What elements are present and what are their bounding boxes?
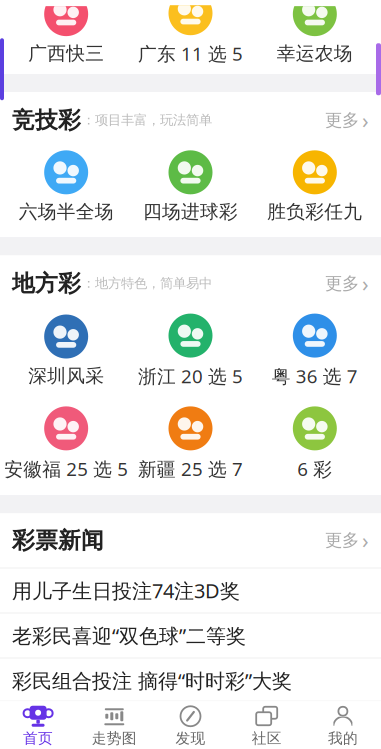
staticText: 六场半全场 (19, 200, 114, 223)
button[interactable]: 更多 (315, 267, 369, 300)
staticText: 老彩民喜迎“双色球”二等奖 (12, 622, 246, 649)
button[interactable]: 四场进球彩 (128, 148, 253, 225)
staticText: › (362, 526, 369, 554)
button[interactable]: 发现 (152, 701, 229, 749)
button[interactable]: 更多 (315, 104, 369, 136)
staticText: 四场进球彩 (143, 200, 238, 223)
button[interactable]: 6 彩 (253, 404, 377, 483)
button[interactable]: 更多 (315, 524, 369, 556)
staticText: 安徽福 25 选 5 (4, 456, 128, 481)
staticText: 走势图 (92, 729, 137, 747)
staticText: ：地方特色，简单易中 (82, 275, 212, 292)
button[interactable]: 老彩民喜迎“双色球”二等奖 (0, 613, 381, 657)
button[interactable]: 粤 36 选 7 (253, 312, 377, 390)
staticText: 竞技彩 (12, 106, 81, 134)
button[interactable]: 走势图 (76, 701, 152, 749)
staticText: 粤 36 选 7 (272, 364, 358, 388)
staticText: 浙江 20 选 5 (138, 364, 243, 388)
staticText: 更多 (325, 109, 359, 131)
staticText: › (362, 106, 369, 134)
button[interactable]: 深圳风采 (4, 312, 128, 389)
button[interactable]: 广西快三 (4, 4, 128, 67)
staticText: 地方彩 (12, 269, 81, 297)
staticText: 我的 (328, 729, 358, 747)
staticText: 广西快三 (28, 42, 104, 65)
staticText: 发现 (175, 729, 205, 747)
button[interactable]: 彩民组合投注 摘得“时时彩”大奖 (0, 658, 381, 702)
button[interactable]: 浙江 20 选 5 (128, 312, 253, 390)
staticText: 广东 11 选 5 (138, 41, 243, 66)
button[interactable]: 用儿子生日投注74注3D奖 (0, 568, 381, 612)
staticText: 彩民组合投注 摘得“时时彩”大奖 (12, 667, 292, 694)
staticText: 更多 (325, 273, 359, 294)
button[interactable]: 安徽福 25 选 5 (4, 404, 128, 483)
staticText: ：项目丰富，玩法简单 (82, 112, 212, 128)
staticText: 深圳风采 (28, 364, 104, 387)
staticText: 首页 (23, 729, 53, 747)
staticText: 新疆 25 选 7 (138, 456, 243, 481)
staticText: 6 彩 (297, 456, 332, 481)
staticText: 用儿子生日投注74注3D奖 (12, 577, 240, 604)
button[interactable]: 六场半全场 (4, 148, 128, 225)
button[interactable]: 首页 (0, 701, 76, 749)
staticText: 胜负彩任九 (267, 200, 362, 223)
button[interactable]: 幸运农场 (253, 4, 377, 67)
staticText: 社区 (252, 729, 282, 747)
staticText: 幸运农场 (277, 42, 353, 65)
staticText: 彩票新闻 (12, 526, 104, 554)
button[interactable]: 新疆 25 选 7 (128, 404, 253, 483)
staticText: 更多 (325, 530, 359, 551)
button[interactable]: 社区 (229, 701, 305, 749)
button[interactable]: 我的 (305, 701, 381, 749)
button[interactable]: 胜负彩任九 (253, 148, 377, 225)
staticText: › (362, 269, 369, 298)
button[interactable]: 广东 11 选 5 (128, 3, 253, 68)
